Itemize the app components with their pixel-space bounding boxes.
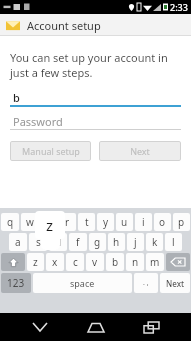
button[interactable]: b (10, 89, 181, 107)
staticText: Manual setup (22, 145, 80, 157)
staticText: y (103, 215, 109, 229)
staticText: q (7, 215, 14, 229)
staticText: g (94, 235, 101, 249)
button[interactable]: h (108, 233, 125, 251)
staticText: n (132, 255, 139, 269)
staticText: c (73, 255, 78, 269)
button[interactable]: l (165, 233, 182, 251)
button[interactable]: r (59, 213, 76, 231)
button[interactable]: a (9, 233, 27, 251)
button[interactable]: f (69, 233, 87, 251)
button[interactable]: u (116, 213, 133, 231)
staticText: f (76, 235, 80, 249)
button[interactable]: Recents (136, 313, 166, 341)
button[interactable]: Back (25, 313, 55, 341)
staticText: You can set up your account in just a fe… (10, 50, 181, 80)
button[interactable]: q (1, 213, 19, 231)
staticText: e (46, 215, 52, 229)
staticText: Next (130, 145, 150, 157)
staticText: v (92, 255, 98, 269)
staticText: k (152, 235, 158, 249)
button[interactable]: Shift (1, 253, 25, 271)
staticText: Password (13, 114, 63, 129)
button[interactable]: Password (10, 113, 181, 130)
staticText: l (172, 235, 175, 249)
button[interactable]: b (106, 253, 124, 271)
button[interactable]: v (86, 253, 104, 271)
button[interactable]: g (89, 233, 106, 251)
staticText: z (46, 215, 54, 235)
button[interactable]: o (154, 213, 171, 231)
staticText: w (26, 215, 34, 229)
button[interactable]: p (173, 213, 190, 231)
button[interactable]: y (97, 213, 114, 231)
staticText: Next (166, 278, 185, 289)
button[interactable]: . , (134, 273, 158, 293)
button[interactable]: w (21, 213, 38, 231)
staticText: b (13, 90, 20, 105)
button[interactable]: j (127, 233, 144, 251)
staticText: . , (143, 278, 149, 288)
button[interactable]: Delete (166, 253, 190, 271)
button[interactable]: c (66, 253, 84, 271)
button[interactable]: e (40, 213, 57, 231)
staticText: d (55, 235, 62, 249)
staticText: Account setup (27, 18, 101, 33)
button[interactable]: space (33, 273, 132, 293)
button[interactable]: m (146, 253, 164, 271)
button[interactable]: Next (160, 273, 190, 293)
button[interactable]: 123 (1, 273, 31, 293)
staticText: h (113, 235, 120, 249)
button[interactable]: x (46, 253, 64, 271)
button[interactable]: z (27, 253, 44, 271)
staticText: s (36, 235, 41, 249)
staticText: u (121, 215, 128, 229)
button[interactable]: Next (99, 141, 181, 161)
button[interactable]: s (29, 233, 47, 251)
staticText: b (112, 255, 119, 269)
staticText: p (178, 215, 185, 229)
staticText: space (70, 277, 95, 289)
button[interactable]: Home (81, 313, 111, 341)
button[interactable]: k (146, 233, 163, 251)
button[interactable]: d (49, 233, 67, 251)
staticText: 123 (7, 276, 25, 290)
staticText: r (65, 215, 70, 229)
staticText: i (142, 215, 145, 229)
staticText: 2:33 (170, 1, 188, 13)
staticText: x (52, 255, 58, 269)
staticText: z (33, 255, 38, 269)
button[interactable]: Manual setup (10, 141, 91, 161)
button[interactable]: n (126, 253, 144, 271)
staticText: t (85, 215, 89, 229)
staticText: a (15, 235, 21, 249)
staticText: m (150, 255, 160, 269)
button[interactable]: t (78, 213, 95, 231)
staticText: j (134, 235, 137, 249)
staticText: o (159, 215, 166, 229)
button[interactable]: i (135, 213, 152, 231)
